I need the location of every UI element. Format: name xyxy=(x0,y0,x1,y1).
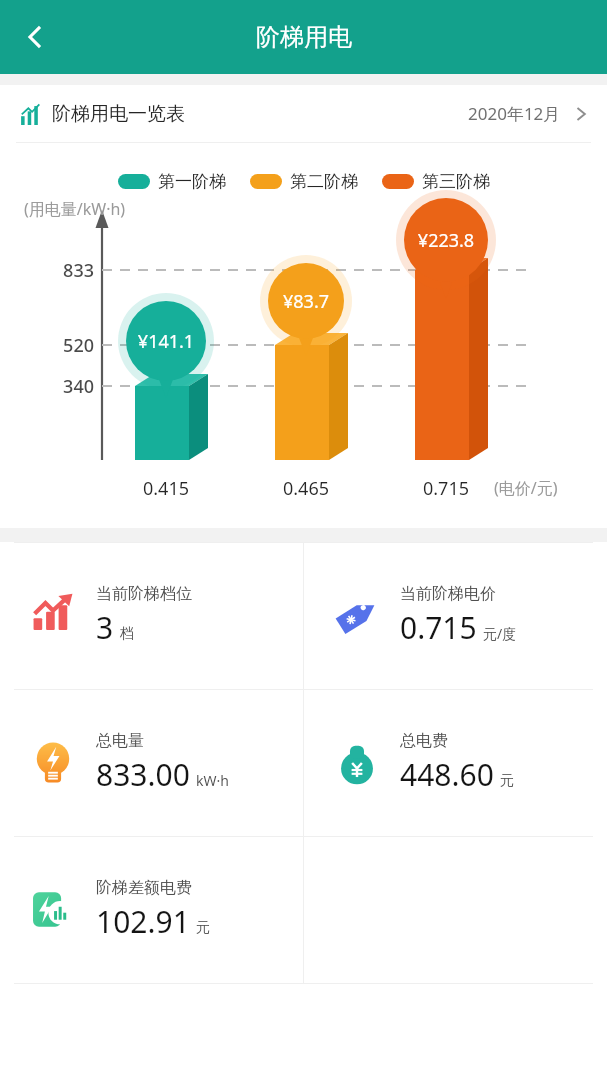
staticText: 第一阶梯 xyxy=(158,171,226,192)
button[interactable]: 阶梯用电一览表 xyxy=(0,85,607,142)
staticText: 833.00 xyxy=(96,754,190,795)
staticText: 阶梯用电 xyxy=(256,22,352,52)
staticText: 第二阶梯 xyxy=(290,171,358,192)
staticText: 0.465 xyxy=(261,476,351,501)
staticText: 2020年12月 xyxy=(468,102,561,125)
staticText: 833 xyxy=(40,258,94,283)
staticText: (用电量/kW·h) xyxy=(24,198,126,220)
staticText: 3 xyxy=(96,607,114,648)
staticText: kW·h xyxy=(196,771,229,790)
staticText: 元/度 xyxy=(483,624,517,643)
button[interactable]: Back xyxy=(6,8,64,66)
button[interactable]: Total cost xyxy=(304,690,607,836)
staticText: 102.91 xyxy=(96,901,190,942)
staticText: 当前阶梯电价 xyxy=(400,584,496,604)
staticText: 0.415 xyxy=(121,476,211,501)
staticText: 当前阶梯档位 xyxy=(96,584,192,604)
staticText: 总电费 xyxy=(400,731,448,751)
button[interactable]: Current tier level xyxy=(0,543,303,689)
staticText: ¥223.8 xyxy=(404,228,488,253)
staticText: 第三阶梯 xyxy=(422,171,490,192)
staticText: ¥141.1 xyxy=(124,329,208,354)
staticText: 0.715 xyxy=(401,476,491,501)
staticText: 340 xyxy=(40,374,94,399)
staticText: 总电量 xyxy=(96,731,144,751)
staticText: ¥83.7 xyxy=(264,289,348,314)
staticText: 档 xyxy=(120,625,134,643)
button[interactable]: 第一阶梯 xyxy=(118,167,226,196)
staticText: 元 xyxy=(196,919,210,937)
button[interactable]: Total usage xyxy=(0,690,303,836)
staticText: 448.60 xyxy=(400,754,494,795)
button[interactable]: Tier difference xyxy=(0,837,303,983)
staticText: 阶梯用电一览表 xyxy=(52,102,185,126)
button[interactable]: 第二阶梯 xyxy=(250,167,358,196)
staticText: 阶梯差额电费 xyxy=(96,878,192,898)
staticText: 0.715 xyxy=(400,607,477,648)
staticText: 520 xyxy=(40,333,94,358)
button[interactable]: Current tier price xyxy=(304,543,607,689)
staticText: 元 xyxy=(500,772,514,790)
button[interactable]: 第三阶梯 xyxy=(382,167,490,196)
staticText: (电价/元) xyxy=(494,477,558,499)
